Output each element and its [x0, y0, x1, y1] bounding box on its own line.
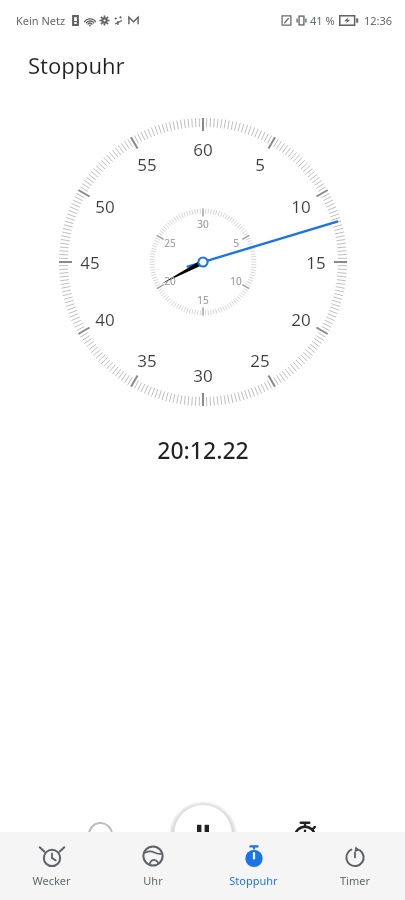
staticText: 20 [164, 274, 176, 288]
staticText: 55 [137, 153, 157, 176]
staticText: 20 [291, 308, 311, 331]
button[interactable]: Stoppuhr [203, 832, 304, 900]
staticText: 35 [137, 349, 157, 372]
staticText: Timer [340, 873, 370, 888]
staticText: 30 [197, 217, 209, 231]
staticText: 41 % [310, 13, 335, 28]
staticText: 10 [291, 195, 311, 218]
staticText: 60 [193, 138, 213, 161]
staticText: 15 [197, 293, 209, 307]
button[interactable]: Uhr [102, 832, 203, 900]
staticText: 30 [193, 364, 213, 387]
staticText: Wecker [32, 873, 71, 888]
staticText: 25 [250, 349, 270, 372]
button[interactable]: Pause [174, 805, 232, 863]
button[interactable]: Runde [283, 812, 327, 856]
button[interactable]: Zurücksetzen [78, 812, 122, 856]
staticText: 50 [95, 195, 115, 218]
staticText: 12:36 [364, 13, 393, 28]
staticText: Stoppuhr [28, 50, 125, 80]
staticText: Uhr [143, 873, 163, 888]
staticText: 15 [306, 251, 326, 274]
button[interactable]: Wecker [0, 832, 102, 900]
staticText: Stoppuhr [229, 873, 278, 888]
staticText: 40 [95, 308, 115, 331]
staticText: 10 [230, 274, 242, 288]
staticText: 5 [255, 153, 265, 176]
staticText: 25 [164, 236, 176, 250]
staticText: 5 [233, 236, 239, 250]
button[interactable]: Timer [304, 832, 405, 900]
staticText: 20:12.22 [157, 434, 249, 465]
staticText: Kein Netz [16, 13, 66, 28]
staticText: 45 [80, 251, 100, 274]
